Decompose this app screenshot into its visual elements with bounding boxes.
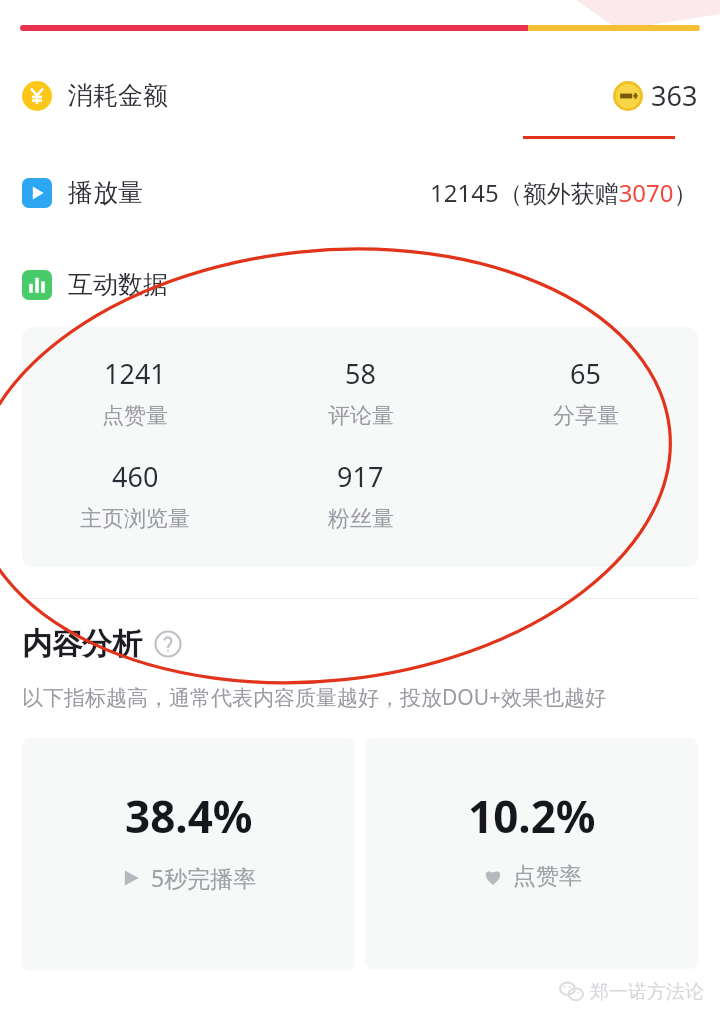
button[interactable]: 460 (22, 458, 248, 533)
staticText: 65 (570, 355, 601, 392)
button[interactable]: 消耗金额 (22, 77, 698, 114)
staticText: 点赞率 (513, 862, 582, 891)
staticText: 12145（额外获赠3070） (430, 176, 698, 209)
button[interactable]: 播放量 (22, 176, 698, 209)
button[interactable]: 65 (473, 355, 698, 430)
staticText: 38.4% (125, 786, 253, 846)
button[interactable]: 10.2% (365, 738, 698, 969)
staticText: 粉丝量 (328, 505, 394, 533)
staticText: 评论量 (328, 402, 394, 430)
button[interactable]: 1241 (22, 355, 248, 430)
staticText: 10.2% (468, 786, 596, 846)
staticText: 5秒完播率 (151, 862, 257, 893)
staticText: 消耗金额 (68, 80, 168, 111)
button[interactable]: 38.4% (22, 738, 355, 971)
staticText: 点赞量 (102, 402, 168, 430)
staticText: 363 (651, 77, 698, 114)
button[interactable]: 内容分析 (22, 625, 698, 663)
staticText: 互动数据 (68, 269, 168, 300)
staticText: 播放量 (68, 177, 143, 208)
button[interactable]: 917 (248, 458, 473, 533)
button[interactable]: 58 (248, 355, 473, 430)
staticText: 以下指标越高，通常代表内容质量越好，投放DOU+效果也越好 (22, 683, 607, 712)
button[interactable]: 互动数据 (22, 269, 698, 300)
staticText: 58 (345, 355, 376, 392)
staticText: 1241 (104, 355, 166, 392)
button[interactable]: Help (154, 630, 182, 658)
staticText: 主页浏览量 (80, 505, 190, 533)
staticText: 内容分析 (22, 625, 142, 663)
staticText: 460 (112, 458, 159, 495)
staticText: 郑一诺方法论 (590, 980, 704, 1004)
staticText: 分享量 (553, 402, 619, 430)
staticText: 917 (337, 458, 384, 495)
